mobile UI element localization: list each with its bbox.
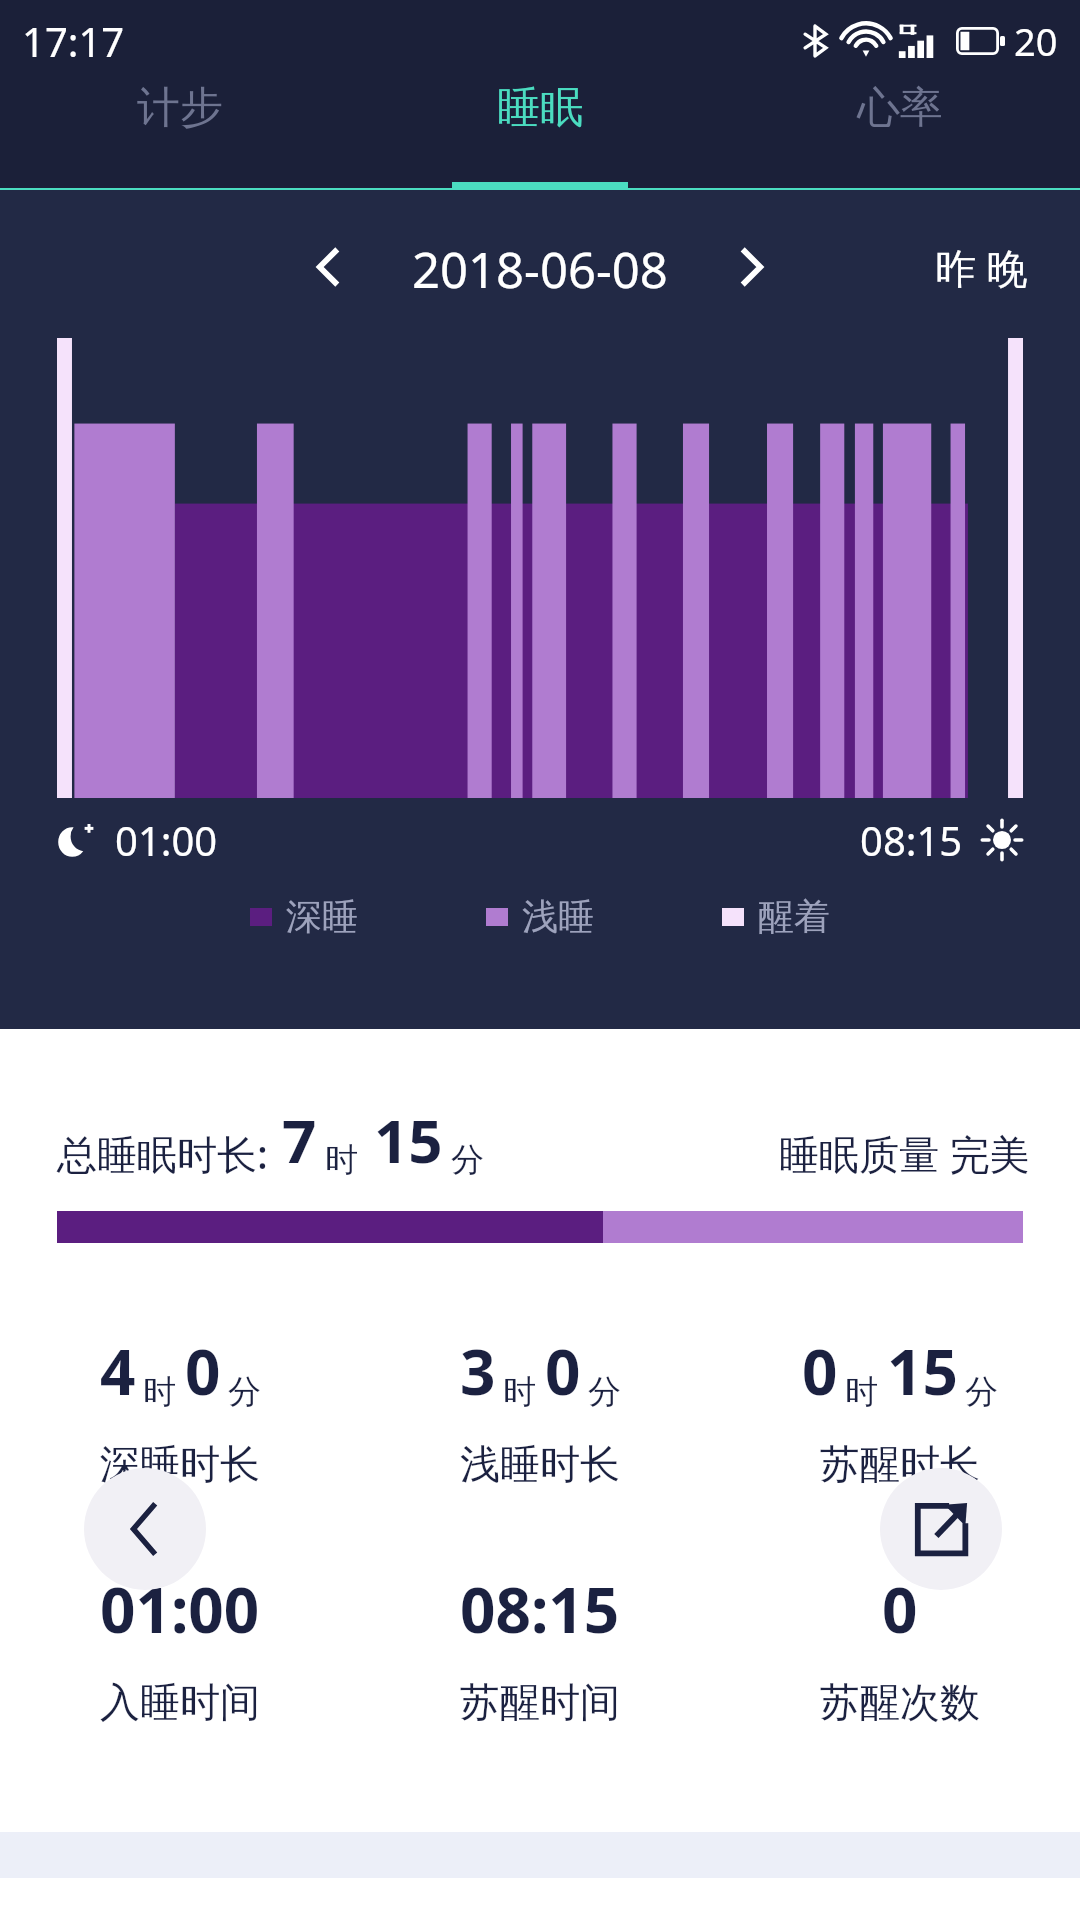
staticText: 01:00: [100, 1567, 260, 1651]
staticText: 分: [451, 1139, 484, 1181]
staticText: 时: [845, 1371, 878, 1413]
staticText: 浅睡时长: [460, 1439, 620, 1489]
staticText: 分: [588, 1371, 621, 1413]
staticText: 08:15: [860, 813, 963, 867]
staticText: 01:00: [115, 813, 218, 867]
staticText: 时: [325, 1139, 358, 1181]
button[interactable]: 睡眠: [360, 81, 720, 135]
staticText: 20: [1014, 15, 1058, 67]
staticText: 总睡眠时长:: [57, 1126, 268, 1181]
staticText: 苏醒时长: [820, 1439, 980, 1489]
button[interactable]: Previous day: [298, 236, 360, 298]
staticText: 4: [100, 1329, 136, 1413]
button[interactable]: 08:15: [360, 1567, 720, 1727]
staticText: 15: [887, 1329, 958, 1413]
staticText: 时: [143, 1371, 176, 1413]
staticText: 计步: [137, 81, 223, 135]
staticText: 深睡: [286, 894, 358, 939]
button[interactable]: 醒着: [722, 894, 830, 939]
staticText: 时: [503, 1371, 536, 1413]
button[interactable]: Back: [84, 1468, 206, 1590]
button[interactable]: Share: [880, 1468, 1002, 1590]
staticText: 睡眠: [497, 81, 583, 135]
button[interactable]: 3: [360, 1329, 720, 1489]
button[interactable]: 心率: [720, 81, 1080, 135]
staticText: 心率: [857, 81, 943, 135]
staticText: 15: [374, 1099, 443, 1181]
staticText: 分: [228, 1371, 261, 1413]
staticText: 入睡时间: [100, 1677, 260, 1727]
button[interactable]: 深睡: [250, 894, 358, 939]
staticText: 7: [282, 1099, 317, 1181]
staticText: 0: [185, 1329, 221, 1413]
staticText: 浅睡: [522, 894, 594, 939]
button[interactable]: 浅睡: [486, 894, 594, 939]
staticText: 苏醒时间: [460, 1677, 620, 1727]
button[interactable]: 计步: [0, 81, 360, 135]
button[interactable]: 昨 晚: [935, 239, 1028, 295]
button[interactable]: Next day: [720, 236, 782, 298]
staticText: 分: [965, 1371, 998, 1413]
button[interactable]: 01:00: [0, 1567, 360, 1727]
staticText: 3: [460, 1329, 496, 1413]
button[interactable]: 2018-06-08: [412, 236, 668, 298]
staticText: 0: [545, 1329, 581, 1413]
staticText: 08:15: [460, 1567, 620, 1651]
staticText: 17:17: [22, 14, 125, 68]
button[interactable]: 0: [720, 1567, 1080, 1727]
button[interactable]: 4: [0, 1329, 360, 1489]
staticText: 深睡时长: [100, 1439, 260, 1489]
staticText: 0: [802, 1329, 838, 1413]
button[interactable]: 0: [720, 1329, 1080, 1489]
staticText: 苏醒次数: [820, 1677, 980, 1727]
staticText: 醒着: [758, 894, 830, 939]
staticText: 0: [882, 1567, 918, 1651]
staticText: 睡眠质量 完美: [779, 1126, 1030, 1181]
